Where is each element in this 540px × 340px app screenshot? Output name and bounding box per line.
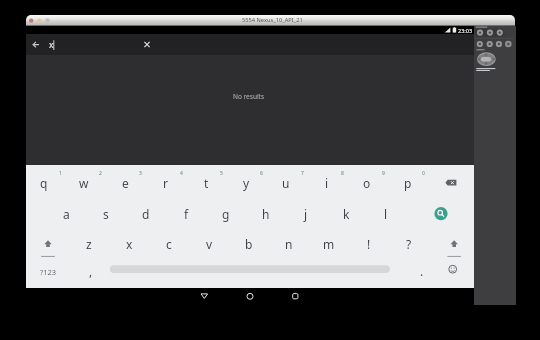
- button[interactable]: [309, 226, 349, 257]
- button[interactable]: [26, 257, 69, 288]
- button[interactable]: [428, 165, 474, 196]
- staticText: a: [63, 206, 70, 222]
- staticText: 3: [139, 170, 142, 177]
- button[interactable]: [476, 40, 483, 47]
- staticText: ?: [406, 236, 412, 252]
- button[interactable]: [347, 165, 387, 196]
- button[interactable]: [195, 288, 214, 304]
- staticText: x: [49, 39, 54, 51]
- button[interactable]: [166, 196, 206, 227]
- button[interactable]: [110, 257, 390, 288]
- staticText: z: [86, 236, 92, 252]
- staticText: h: [262, 206, 270, 222]
- button[interactable]: [109, 226, 149, 257]
- button[interactable]: [284, 288, 303, 304]
- button[interactable]: [477, 29, 484, 36]
- button[interactable]: [69, 226, 109, 257]
- staticText: t: [204, 175, 209, 191]
- staticText: f: [184, 206, 189, 222]
- button[interactable]: [226, 165, 266, 196]
- button[interactable]: [442, 257, 473, 288]
- staticText: l: [384, 206, 388, 222]
- button[interactable]: [269, 226, 309, 257]
- staticText: d: [142, 206, 150, 222]
- staticText: No results: [233, 92, 265, 101]
- button[interactable]: [240, 288, 259, 304]
- button[interactable]: [64, 165, 104, 196]
- button[interactable]: [486, 40, 493, 47]
- staticText: 7: [301, 170, 304, 177]
- staticText: s: [103, 206, 109, 222]
- staticText: 9: [382, 170, 385, 177]
- button[interactable]: [229, 226, 269, 257]
- button[interactable]: [186, 165, 226, 196]
- button[interactable]: [246, 196, 286, 227]
- button[interactable]: [140, 38, 154, 52]
- button[interactable]: [266, 165, 306, 196]
- button[interactable]: [149, 226, 189, 257]
- staticText: x: [126, 236, 133, 252]
- button[interactable]: [326, 196, 366, 227]
- staticText: 23:03: [458, 27, 473, 34]
- button[interactable]: [366, 196, 406, 227]
- button[interactable]: [307, 165, 347, 196]
- button[interactable]: [206, 196, 246, 227]
- button[interactable]: [487, 29, 494, 36]
- staticText: y: [243, 175, 250, 191]
- staticText: ,: [89, 263, 93, 279]
- staticText: g: [222, 206, 230, 222]
- staticText: 4: [180, 170, 183, 177]
- staticText: r: [163, 175, 168, 191]
- button[interactable]: [477, 52, 496, 66]
- button[interactable]: [349, 226, 389, 257]
- button[interactable]: [46, 196, 86, 227]
- staticText: i: [325, 175, 329, 191]
- staticText: w: [79, 175, 89, 191]
- staticText: b: [245, 236, 253, 252]
- button[interactable]: [189, 226, 229, 257]
- button[interactable]: [286, 196, 326, 227]
- staticText: !: [367, 236, 371, 252]
- staticText: n: [285, 236, 293, 252]
- staticText: 8: [341, 170, 344, 177]
- staticText: k: [343, 206, 350, 222]
- button[interactable]: [506, 40, 513, 47]
- staticText: m: [323, 236, 335, 252]
- staticText: u: [282, 175, 290, 191]
- button[interactable]: [389, 226, 429, 257]
- button[interactable]: [428, 196, 474, 227]
- staticText: o: [363, 175, 371, 191]
- staticText: c: [166, 236, 172, 252]
- button[interactable]: [69, 257, 111, 288]
- button[interactable]: [29, 37, 42, 52]
- staticText: 2: [99, 170, 102, 177]
- staticText: e: [122, 175, 129, 191]
- staticText: p: [404, 175, 412, 191]
- button[interactable]: [105, 165, 145, 196]
- staticText: 6: [260, 170, 263, 177]
- button[interactable]: [429, 226, 473, 257]
- button[interactable]: [26, 226, 69, 257]
- staticText: 0: [422, 170, 425, 177]
- button[interactable]: [496, 40, 503, 47]
- staticText: ?123: [40, 267, 57, 277]
- staticText: 5554 Nexus_10_API_21: [242, 16, 303, 24]
- button[interactable]: [126, 196, 166, 227]
- button[interactable]: [400, 257, 442, 288]
- button[interactable]: [145, 165, 185, 196]
- staticText: v: [206, 236, 213, 252]
- button[interactable]: [86, 196, 126, 227]
- staticText: 5: [220, 170, 223, 177]
- staticText: 1: [59, 170, 62, 177]
- button[interactable]: [388, 165, 428, 196]
- staticText: j: [304, 206, 308, 222]
- staticText: q: [40, 175, 48, 191]
- button[interactable]: [24, 165, 64, 196]
- staticText: .: [420, 263, 424, 279]
- button[interactable]: [497, 29, 504, 36]
